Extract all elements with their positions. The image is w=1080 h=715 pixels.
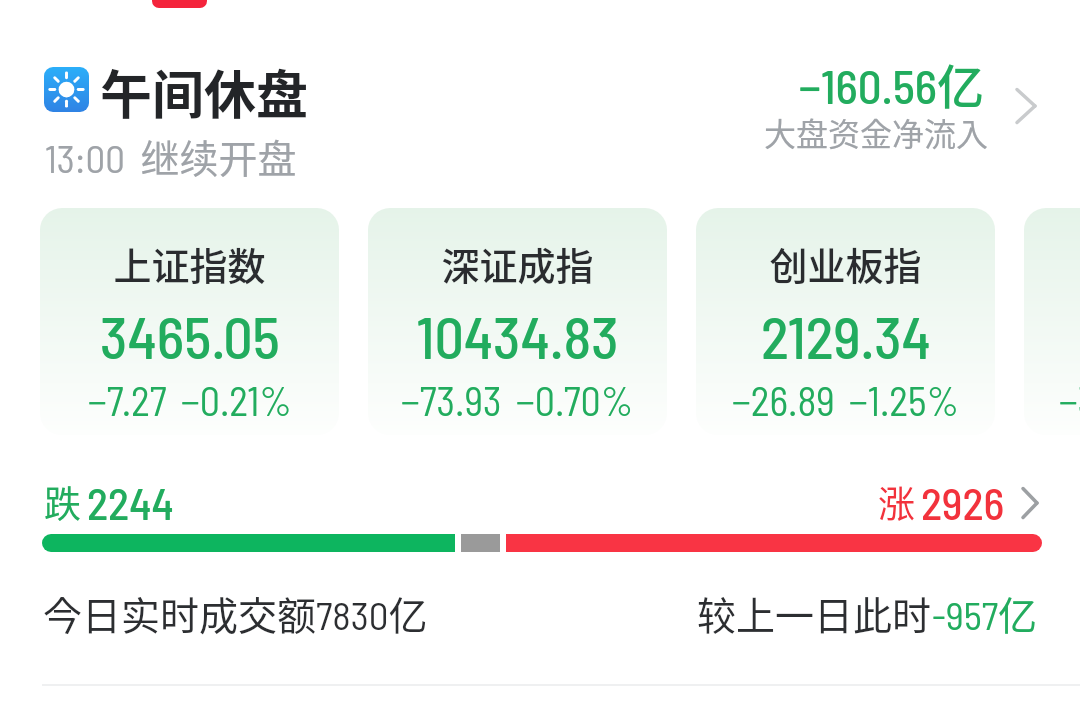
button[interactable]: 午间休盘 13:00 继续开盘，大盘资金净流入 −160.56亿 — [0, 38, 1080, 186]
staticText: 上证指数 — [113, 236, 266, 291]
staticText: 2926 — [921, 476, 1005, 529]
staticText: 13:00 继续开盘 — [45, 128, 297, 184]
staticText: 今日实时成交额7830亿 — [43, 585, 428, 641]
staticText: 3465.05 — [100, 301, 280, 371]
staticText: −0.70% — [516, 376, 634, 424]
button[interactable]: 上证指数 — [40, 208, 339, 435]
staticText: -957亿 — [932, 585, 1038, 641]
staticText: 创业板指 — [769, 236, 922, 291]
staticText: 涨 — [878, 475, 915, 529]
button[interactable]: 创业板指 — [696, 208, 995, 435]
button[interactable]: 中小板指 — [1024, 208, 1080, 435]
staticText: 跌 — [44, 475, 81, 529]
staticText: −26.89 — [732, 376, 835, 424]
staticText: −7.27 — [88, 376, 167, 424]
button[interactable]: 跌2244 涨2926 涨跌家数详情 — [0, 466, 1080, 532]
staticText: −73.93 — [401, 376, 502, 424]
staticText: −0.21% — [181, 376, 292, 424]
staticText: 深证成指 — [441, 236, 594, 291]
button[interactable]: 深证成指 — [368, 208, 667, 435]
staticText: 较上一日此时 — [697, 585, 932, 641]
staticText: 午间休盘 — [100, 54, 309, 129]
staticText: −1.25% — [849, 376, 960, 424]
staticText: −160.56亿 — [799, 49, 985, 117]
staticText: 10434.83 — [416, 301, 619, 371]
staticText: 2244 — [87, 476, 174, 529]
staticText: −35.18 — [1059, 376, 1080, 424]
staticText: 2129.34 — [761, 301, 931, 371]
staticText: 大盘资金净流入 — [764, 109, 989, 155]
